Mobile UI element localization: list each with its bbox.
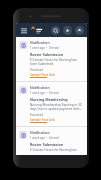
- button[interactable]: Sample Text Link: [30, 118, 55, 123]
- button[interactable]: Account: [75, 26, 84, 35]
- staticText: Notification: [30, 85, 50, 90]
- staticText: Notification: [30, 40, 50, 45]
- staticText: Sample Text Link: [30, 118, 55, 122]
- staticText: Download: [30, 113, 43, 117]
- staticText: Roster Submission: [30, 52, 64, 57]
- staticText: Nursing Membership: [30, 97, 68, 102]
- button[interactable]: App logo, home: [30, 25, 46, 35]
- staticText: 1 week ago • Unread: [30, 91, 59, 95]
- staticText: Nursing Membership Expiring in 30 days, …: [30, 103, 84, 111]
- button[interactable]: Notification: [16, 127, 87, 155]
- staticText: E Contact Hours for Nursing has been Sub…: [30, 148, 84, 152]
- button[interactable]: Sample Text Link: [30, 73, 55, 78]
- staticText: Download: [30, 68, 43, 72]
- button[interactable]: Open navigation menu: [19, 26, 28, 35]
- button[interactable]: Search: [51, 26, 60, 35]
- staticText: 1 week ago • Unread: [30, 136, 59, 140]
- staticText: Notification: [30, 130, 50, 135]
- button[interactable]: Notification: [16, 37, 87, 81]
- button[interactable]: Notifications: [63, 26, 72, 35]
- staticText: E Contact Hours for Nursing has been Sub…: [30, 58, 84, 66]
- staticText: Sample Text Link: [30, 73, 55, 77]
- button[interactable]: Notification: [16, 82, 87, 126]
- staticText: Roster Submission: [30, 142, 64, 147]
- staticText: 1 week ago • Unread: [30, 46, 59, 50]
